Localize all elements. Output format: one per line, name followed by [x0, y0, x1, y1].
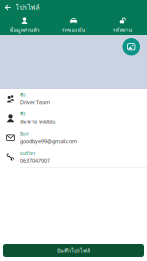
staticText: รหัสผ่าน	[112, 26, 132, 34]
staticText: ชื่อ	[20, 111, 25, 117]
staticText: Driver Team	[20, 99, 50, 106]
staticText: โปรไฟล์	[15, 2, 39, 13]
button[interactable]: ข้อมูลส่วนตัว	[0, 14, 49, 36]
staticText: ชื่อ	[20, 92, 25, 98]
staticText: ข้อมูลส่วนตัว	[9, 26, 39, 34]
staticText: goodbye99@gmail.com	[20, 138, 77, 145]
button[interactable]: รหัสผ่าน	[98, 14, 147, 36]
staticText: อีเมล	[20, 131, 28, 137]
button[interactable]: บันทึกโปรไฟล์	[3, 244, 144, 257]
button[interactable]: Back	[2, 1, 13, 14]
button[interactable]: รถของฉัน	[49, 14, 98, 36]
staticText: 0637047907	[20, 157, 50, 164]
staticText: เบอร์โทร	[20, 150, 35, 157]
staticText: รถของฉัน	[61, 26, 85, 34]
staticText: บันทึกโปรไฟล์	[57, 246, 90, 255]
staticText: สมชาย ทดสอบ	[20, 117, 55, 126]
button[interactable]: Change photo	[122, 38, 140, 55]
